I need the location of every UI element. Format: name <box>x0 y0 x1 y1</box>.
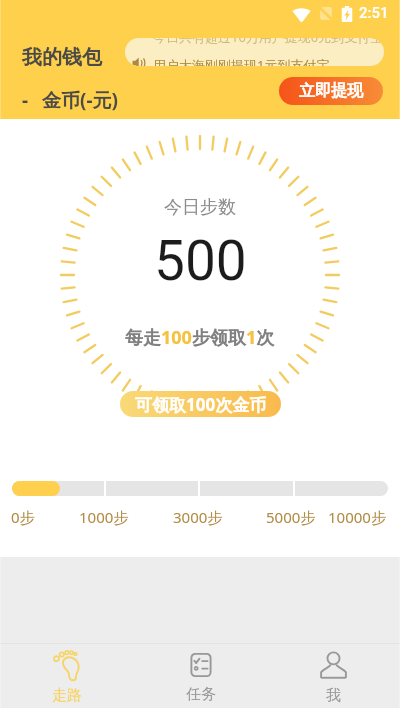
staticText: 3000步 <box>173 507 223 527</box>
staticText: 1000步 <box>79 507 129 527</box>
staticText: 用户大海刚刚提现1元到支付宝 <box>153 56 330 66</box>
staticText: 可领取100次金币 <box>135 393 267 416</box>
staticText: 今日共有超过10万用户提现0元到支付宝 <box>153 38 384 46</box>
staticText: 500 <box>154 229 247 293</box>
staticText: 立即提现 <box>299 81 363 101</box>
staticText: 今日步数 <box>164 196 236 219</box>
staticText: 每走100步领取1次 <box>125 325 275 350</box>
button[interactable]: 我 <box>267 644 400 710</box>
staticText: 0步 <box>11 507 35 527</box>
button[interactable]: 立即提现 <box>279 77 383 105</box>
staticText: 任务 <box>186 685 216 704</box>
staticText: 2:51 <box>359 4 389 22</box>
staticText: - <box>22 87 29 113</box>
staticText: 我的钱包 <box>22 45 102 70</box>
button[interactable]: 走路 <box>0 644 134 710</box>
button[interactable]: 可领取100次金币 <box>120 391 281 417</box>
button[interactable]: 任务 <box>134 644 267 710</box>
staticText: 金币(-元) <box>42 87 118 113</box>
staticText: 我 <box>326 686 341 705</box>
staticText: 5000步 <box>266 507 316 527</box>
staticText: 10000步 <box>328 507 386 527</box>
staticText: 走路 <box>52 686 82 705</box>
button[interactable]: 今日共有超过10万用户提现0元到支付宝 <box>125 38 384 66</box>
